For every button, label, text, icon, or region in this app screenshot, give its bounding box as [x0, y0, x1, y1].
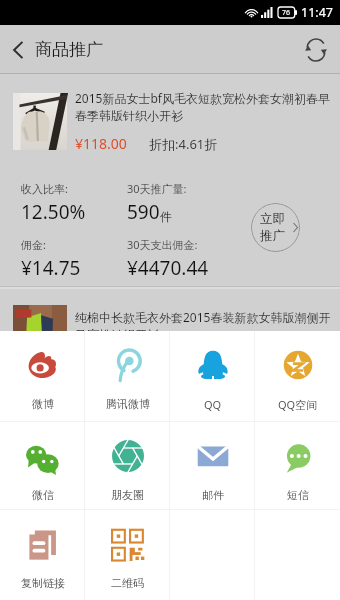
staticText: 30天推广量:	[127, 181, 187, 196]
staticText: 30天支出佣金:	[127, 237, 198, 252]
staticText: 纯棉中长款毛衣外套2015春装新款女韩版潮侧开叉宽松针织开衫	[75, 309, 331, 343]
button[interactable]: 复制链接	[0, 510, 85, 600]
staticText: 佣金:	[21, 237, 46, 252]
staticText: 腾讯微博	[106, 397, 150, 411]
staticText: ¥4470.44	[127, 255, 209, 281]
button[interactable]: 立即	[251, 203, 300, 252]
staticText: 2015新品女士bf风毛衣短款宽松外套女潮初春早春季韩版针织小开衫	[75, 90, 331, 124]
staticText: 76	[282, 8, 291, 18]
staticText: 12.50%	[21, 199, 86, 225]
button[interactable]: 腾讯微博	[85, 331, 170, 421]
button[interactable]: 朋友圈	[85, 422, 170, 509]
staticText: 商品推广	[35, 39, 103, 60]
button[interactable]: 邮件	[170, 422, 255, 509]
button[interactable]: Refresh	[292, 26, 340, 74]
button[interactable]: QQ空间	[255, 331, 340, 421]
staticText: 短信	[287, 488, 309, 502]
button[interactable]: QQ	[170, 331, 255, 421]
button[interactable]: Back	[0, 26, 36, 74]
staticText: 邮件	[202, 488, 224, 502]
staticText: 折扣:4.61折	[149, 135, 218, 153]
button[interactable]: 二维码	[85, 510, 170, 600]
staticText: 微博	[32, 397, 54, 411]
staticText: 收入比率:	[21, 181, 68, 196]
button[interactable]: 短信	[255, 422, 340, 509]
button[interactable]: 微信	[0, 422, 85, 509]
staticText: 11:47	[301, 4, 333, 21]
staticText: QQ	[204, 397, 222, 412]
staticText: 复制链接	[21, 576, 65, 590]
staticText: ¥14.75	[21, 255, 81, 281]
staticText: 微信	[32, 488, 54, 502]
staticText: ¥118.00	[75, 134, 127, 153]
staticText: 立即	[260, 211, 285, 227]
staticText: 朋友圈	[111, 488, 144, 502]
staticText: QQ空间	[278, 397, 318, 412]
staticText: 件	[160, 209, 172, 224]
button[interactable]: 微博	[0, 331, 85, 421]
staticText: 推广	[260, 228, 285, 244]
staticText: 590	[127, 199, 160, 225]
staticText: 二维码	[111, 576, 144, 590]
